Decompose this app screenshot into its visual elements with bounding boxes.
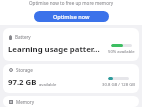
staticText: Battery: [15, 34, 31, 40]
button[interactable]: Battery: [3, 28, 139, 61]
staticText: available: [39, 82, 57, 88]
button[interactable]: Storage: [3, 64, 139, 93]
staticText: 50% available: [108, 49, 135, 55]
staticText: 30.8 GB / 128 GB: [102, 82, 135, 88]
staticText: Optimise now to free up more memory: [29, 0, 114, 6]
staticText: Storage: [16, 67, 33, 73]
staticText: Optimise now: [53, 13, 90, 20]
button[interactable]: Memory: [3, 96, 139, 107]
staticText: Learning usage patter...: [8, 44, 100, 55]
button[interactable]: Optimise now: [34, 11, 109, 22]
staticText: 97.2 GB: [8, 77, 37, 88]
staticText: Memory: [16, 99, 35, 105]
